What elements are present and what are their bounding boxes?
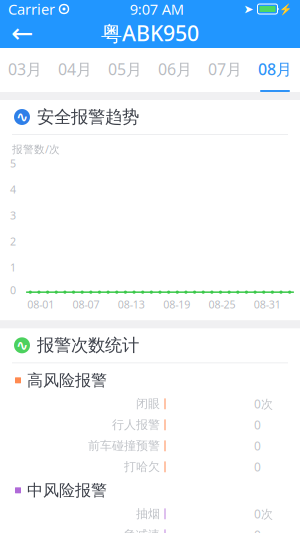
staticText: 0	[254, 527, 261, 533]
button[interactable]: 04月	[50, 48, 100, 92]
staticText: 1	[10, 260, 16, 274]
staticText: 安全报警趋势	[37, 106, 139, 128]
staticText: 08-01	[27, 297, 54, 311]
staticText: 05月	[108, 58, 142, 80]
staticText: 07月	[208, 58, 242, 80]
staticText: 08-31	[254, 297, 281, 311]
staticText: 0	[254, 417, 261, 433]
staticText: 08-07	[72, 297, 99, 311]
staticText: 急减速	[124, 527, 160, 533]
staticText: 08-25	[208, 297, 235, 311]
staticText: 06月	[158, 58, 192, 80]
staticText: 08-13	[118, 297, 145, 311]
staticText: 抽烟	[136, 506, 160, 521]
staticText: 04月	[58, 58, 92, 80]
staticText: 0	[254, 459, 261, 475]
staticText: 9:07 AM	[130, 0, 184, 19]
staticText: 报警数/次	[12, 142, 60, 156]
staticText: ←	[11, 18, 33, 48]
button[interactable]: 06月	[150, 48, 200, 92]
staticText: ➤	[243, 2, 253, 16]
staticText: ⚡	[279, 3, 292, 15]
staticText: 2	[10, 234, 16, 248]
staticText: Carrier	[8, 0, 55, 19]
button[interactable]: 07月	[200, 48, 250, 92]
button[interactable]: Back	[0, 18, 44, 48]
staticText: 3	[10, 208, 16, 222]
staticText: 0	[10, 283, 16, 297]
button[interactable]: 03月	[0, 48, 50, 92]
staticText: 5	[10, 156, 16, 170]
staticText: 0次	[254, 506, 273, 522]
staticText: 0	[254, 438, 261, 454]
staticText: 中风险报警	[27, 480, 107, 500]
staticText: 08-19	[163, 297, 190, 311]
staticText: 08月	[258, 58, 292, 80]
staticText: ∿	[16, 337, 28, 354]
button[interactable]: 05月	[100, 48, 150, 92]
button[interactable]: 08月	[250, 48, 300, 92]
staticText: 行人报警	[112, 417, 160, 432]
staticText: 前车碰撞预警	[88, 438, 160, 453]
staticText: 报警次数统计	[37, 335, 139, 356]
staticText: 打哈欠	[124, 459, 160, 474]
staticText: 闭眼	[136, 396, 160, 411]
staticText: 高风险报警	[27, 370, 107, 390]
staticText: 03月	[8, 58, 42, 80]
staticText: 4	[10, 182, 16, 196]
staticText: 0次	[254, 396, 273, 412]
staticText: 粤ABK950	[101, 19, 199, 47]
staticText: ∿	[16, 109, 28, 125]
